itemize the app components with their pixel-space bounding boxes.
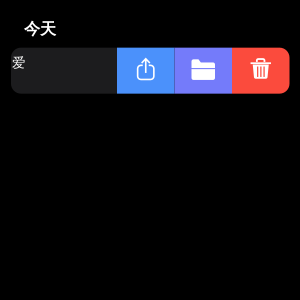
button[interactable]: Delete bbox=[232, 48, 289, 94]
button[interactable]: Share bbox=[117, 48, 174, 94]
staticText: 爱 bbox=[12, 55, 25, 71]
staticText: 今天 bbox=[24, 19, 56, 39]
button[interactable]: 爱 bbox=[11, 48, 117, 94]
button[interactable]: Move to Folder bbox=[174, 48, 232, 94]
